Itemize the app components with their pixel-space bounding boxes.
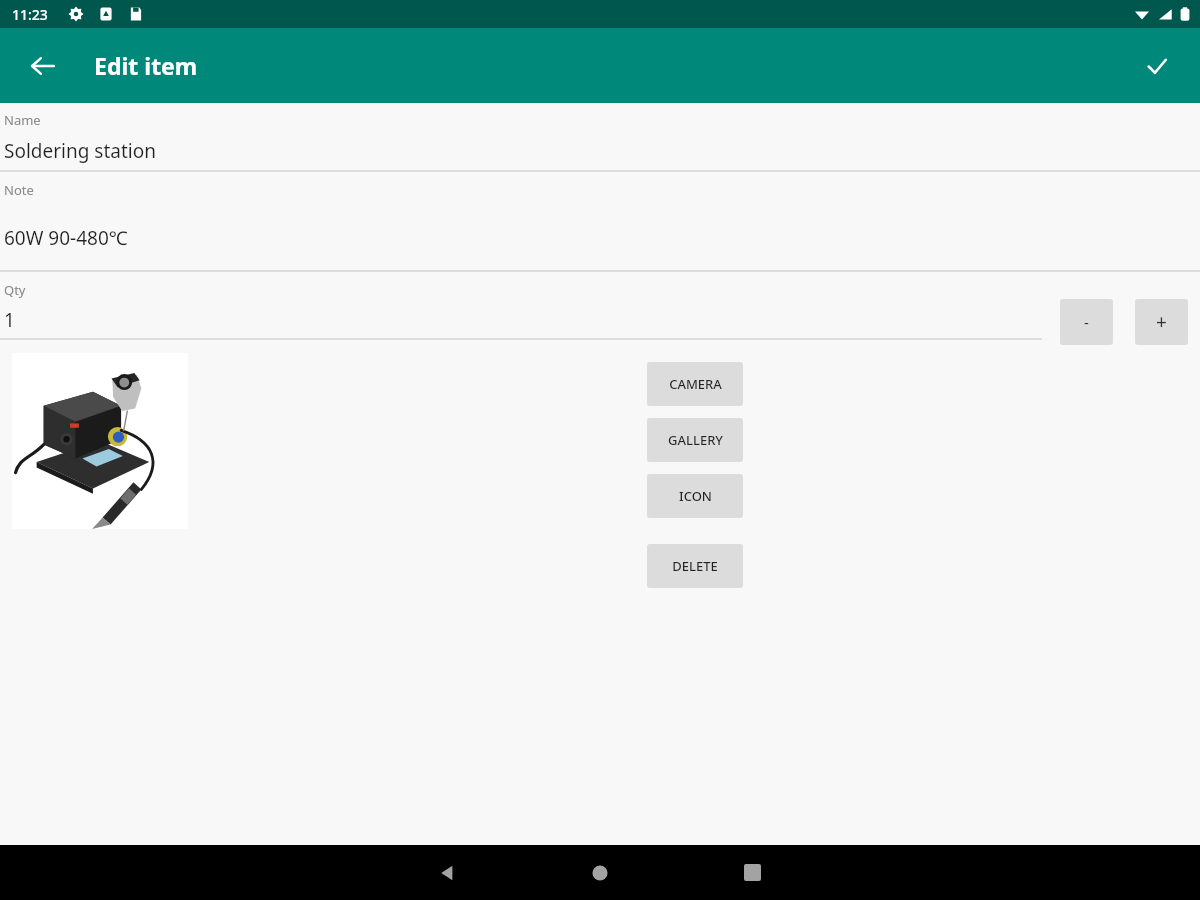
button[interactable]: ICON bbox=[647, 474, 743, 518]
button[interactable]: GALLERY bbox=[647, 418, 743, 462]
button[interactable]: 1 bbox=[0, 306, 1200, 334]
staticText: 60W 90-480℃ bbox=[4, 225, 128, 251]
button[interactable]: Back bbox=[22, 45, 64, 87]
staticText: Name bbox=[4, 111, 41, 129]
staticText: Edit item bbox=[94, 50, 198, 81]
button[interactable]: 60W 90-480℃ bbox=[0, 223, 1200, 253]
button[interactable]: CAMERA bbox=[647, 362, 743, 406]
staticText: Soldering station bbox=[4, 138, 156, 164]
button[interactable]: Item photo bbox=[12, 353, 188, 529]
staticText: DELETE bbox=[672, 557, 718, 575]
staticText: 1 bbox=[4, 307, 15, 333]
staticText: ICON bbox=[679, 487, 712, 505]
button[interactable]: Increase bbox=[1135, 299, 1188, 345]
staticText: GALLERY bbox=[668, 431, 723, 449]
staticText: Qty bbox=[4, 281, 26, 299]
button[interactable]: Recent apps bbox=[724, 845, 780, 900]
button[interactable]: Decrease bbox=[1060, 299, 1113, 345]
button[interactable]: Soldering station bbox=[0, 136, 1200, 166]
button[interactable]: Back bbox=[420, 845, 476, 900]
button[interactable]: Save bbox=[1134, 43, 1180, 89]
button[interactable]: DELETE bbox=[647, 544, 743, 588]
staticText: - bbox=[1084, 312, 1089, 332]
staticText: CAMERA bbox=[669, 375, 722, 393]
staticText: Note bbox=[4, 181, 34, 199]
button[interactable]: Home bbox=[572, 845, 628, 900]
staticText: 11:23 bbox=[12, 5, 48, 24]
staticText: + bbox=[1156, 309, 1167, 335]
